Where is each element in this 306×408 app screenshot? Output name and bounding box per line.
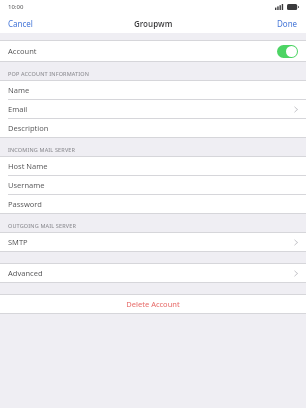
staticText: Cancel bbox=[8, 18, 33, 29]
button[interactable]: Password bbox=[0, 195, 306, 213]
button[interactable]: Done bbox=[269, 13, 306, 33]
button[interactable]: Delete Account bbox=[0, 295, 306, 313]
button[interactable]: SMTP bbox=[0, 233, 306, 251]
staticText: INCOMING MAIL SERVER bbox=[8, 146, 76, 153]
staticText: OUTGOING MAIL SERVER bbox=[8, 222, 76, 229]
button[interactable]: Host Name bbox=[0, 157, 306, 175]
staticText: Done bbox=[277, 18, 298, 29]
staticText: SMTP bbox=[8, 237, 28, 247]
button[interactable]: Email bbox=[0, 100, 306, 118]
staticText: Password bbox=[8, 199, 42, 209]
staticText: Description bbox=[8, 123, 49, 133]
staticText: Name bbox=[8, 85, 30, 95]
staticText: Groupwm bbox=[134, 18, 173, 29]
button[interactable]: Description bbox=[0, 119, 306, 137]
button[interactable]: Advanced bbox=[0, 264, 306, 282]
button[interactable]: Account toggle, on bbox=[277, 45, 298, 58]
staticText: Email bbox=[8, 104, 28, 114]
staticText: Account bbox=[8, 46, 37, 56]
staticText: POP ACCOUNT INFORMATION bbox=[8, 70, 90, 77]
button[interactable]: Cancel bbox=[0, 13, 41, 33]
button[interactable]: Account bbox=[0, 41, 306, 61]
staticText: Username bbox=[8, 180, 45, 190]
button[interactable]: Name bbox=[0, 81, 306, 99]
staticText: Delete Account bbox=[126, 299, 180, 309]
button[interactable]: Username bbox=[0, 176, 306, 194]
staticText: Advanced bbox=[8, 268, 43, 278]
staticText: 10:00 bbox=[8, 3, 24, 11]
staticText: Host Name bbox=[8, 161, 48, 171]
